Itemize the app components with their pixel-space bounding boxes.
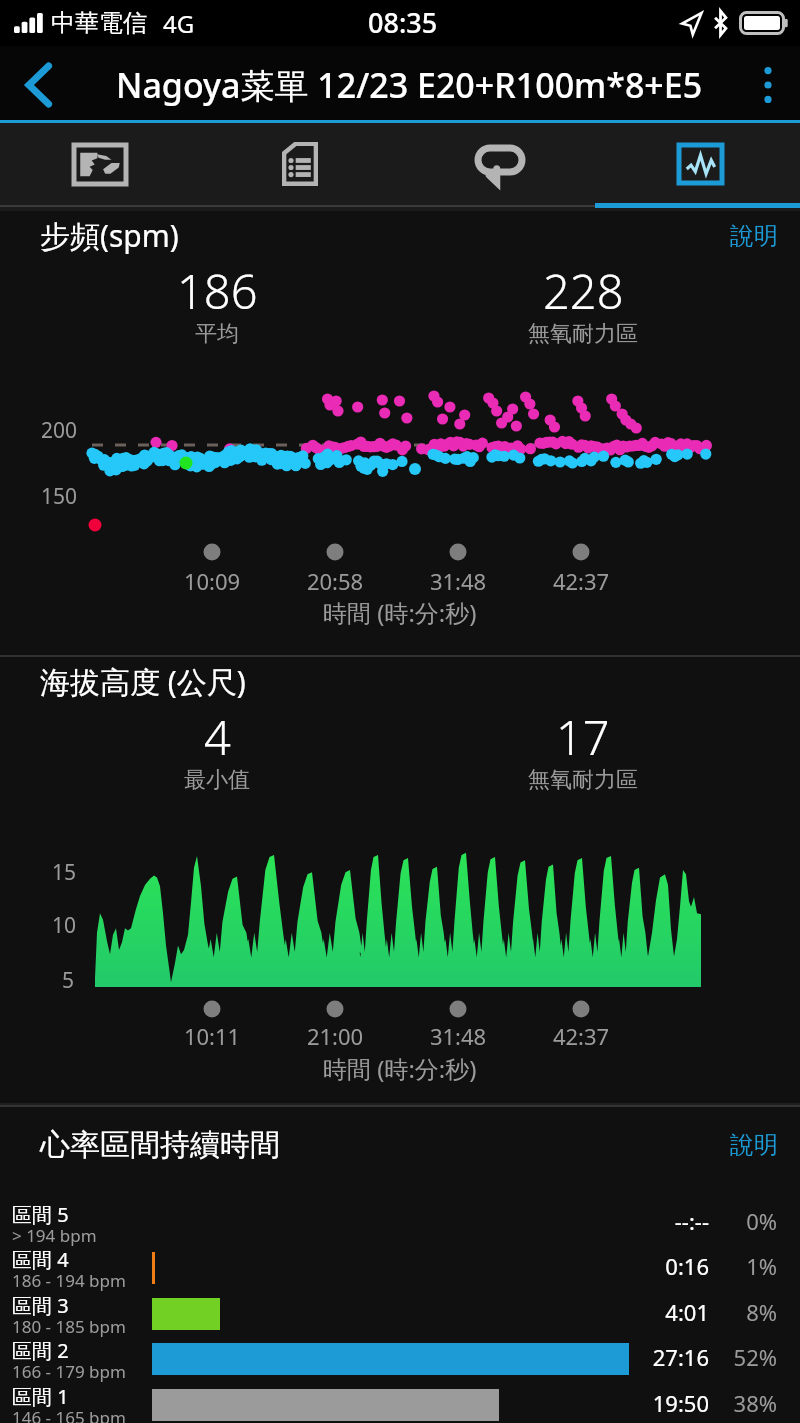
staticText: 10:09 <box>162 566 262 596</box>
staticText: 15 <box>52 858 77 887</box>
staticText: 中華電信 <box>51 8 147 38</box>
staticText: 08:35 <box>368 4 438 41</box>
staticText: > 194 bpm <box>12 1224 97 1247</box>
staticText: 區間 2 <box>12 1337 69 1364</box>
staticText: 10:11 <box>162 1021 262 1051</box>
staticText: 17 <box>556 705 610 769</box>
staticText: 區間 4 <box>12 1246 69 1273</box>
staticText: 10 <box>52 911 77 940</box>
staticText: 時間 (時:分:秒) <box>323 596 477 629</box>
staticText: Nagoya菜單 12/23 E20+R100m*8+E5 <box>116 62 703 108</box>
staticText: 說明 <box>730 221 778 251</box>
staticText: 42:37 <box>531 566 631 596</box>
button[interactable]: 區間 2 <box>0 1337 800 1383</box>
staticText: 5 <box>62 966 75 995</box>
staticText: 19:50 <box>631 1388 709 1418</box>
staticText: 186 <box>177 259 258 323</box>
staticText: 186 - 194 bpm <box>12 1269 126 1292</box>
staticText: 平均 <box>195 320 239 348</box>
staticText: 說明 <box>730 1130 778 1160</box>
staticText: 52% <box>721 1342 777 1372</box>
button[interactable]: More options <box>736 46 800 123</box>
button[interactable]: 區間 5 <box>0 1201 800 1247</box>
staticText: 區間 3 <box>12 1292 69 1319</box>
staticText: 1% <box>721 1251 777 1281</box>
button[interactable]: Details <box>200 123 400 211</box>
staticText: 心率區間持續時間 <box>40 1126 280 1164</box>
button[interactable]: 說明 <box>708 1126 800 1164</box>
staticText: 38% <box>721 1388 777 1418</box>
staticText: 4:01 <box>631 1297 709 1327</box>
staticText: 步頻(spm) <box>40 215 179 256</box>
staticText: 200 <box>41 416 78 445</box>
button[interactable]: Laps <box>400 123 600 211</box>
staticText: 228 <box>543 259 624 323</box>
button[interactable]: 區間 1 <box>0 1383 800 1423</box>
button[interactable]: 說明 <box>708 217 800 255</box>
button[interactable]: Charts <box>600 123 800 211</box>
staticText: 0% <box>721 1206 777 1236</box>
staticText: 27:16 <box>631 1342 709 1372</box>
staticText: 4G <box>163 7 195 40</box>
staticText: 20:58 <box>285 566 385 596</box>
button[interactable]: 區間 4 <box>0 1246 800 1292</box>
staticText: 180 - 185 bpm <box>12 1315 126 1338</box>
staticText: 31:48 <box>408 1021 508 1051</box>
staticText: 時間 (時:分:秒) <box>323 1052 477 1085</box>
staticText: 區間 5 <box>12 1201 69 1228</box>
staticText: 海拔高度 (公尺) <box>40 661 246 702</box>
staticText: 無氧耐力區 <box>528 766 638 794</box>
staticText: 146 - 165 bpm <box>12 1406 126 1423</box>
staticText: 42:37 <box>531 1021 631 1051</box>
staticText: 0:16 <box>631 1251 709 1281</box>
staticText: 無氧耐力區 <box>528 320 638 348</box>
button[interactable]: Back <box>0 46 78 123</box>
staticText: 166 - 179 bpm <box>12 1360 126 1383</box>
staticText: --:-- <box>631 1206 709 1236</box>
staticText: 150 <box>41 482 78 511</box>
button[interactable]: Map <box>0 123 200 211</box>
button[interactable]: 區間 3 <box>0 1292 800 1338</box>
staticText: 最小值 <box>184 766 250 794</box>
staticText: 31:48 <box>408 566 508 596</box>
staticText: 區間 1 <box>12 1383 69 1410</box>
staticText: 4 <box>204 705 231 769</box>
staticText: 8% <box>721 1297 777 1327</box>
staticText: 21:00 <box>285 1021 385 1051</box>
